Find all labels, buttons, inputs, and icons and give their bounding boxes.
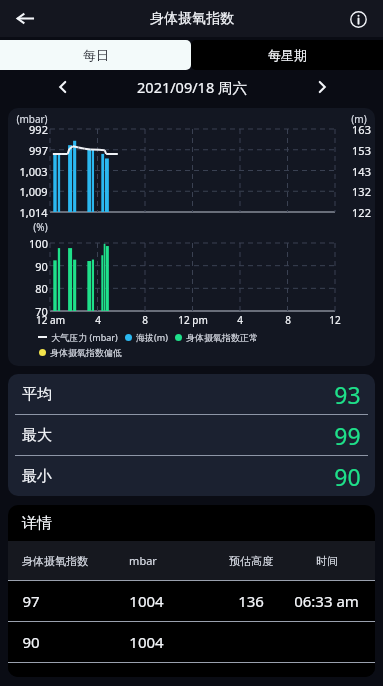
staticText: 身体摄氧指数 — [150, 10, 234, 28]
staticText: 每日 — [83, 47, 109, 63]
button[interactable]: 每日 — [0, 40, 191, 70]
staticText: 70 — [35, 304, 48, 319]
staticText: (%) — [33, 220, 48, 234]
button[interactable]: Info — [340, 1, 376, 37]
staticText: (m) — [351, 112, 367, 126]
button[interactable]: 每星期 — [191, 40, 383, 70]
staticText: 122 — [352, 205, 371, 220]
staticText: 90 — [35, 259, 48, 274]
button[interactable]: 最小 — [8, 456, 375, 496]
staticText: 1,014 — [19, 205, 48, 220]
staticText: 06:33 am — [294, 591, 359, 611]
staticText: 99 — [334, 420, 361, 451]
staticText: 8 — [142, 313, 148, 327]
button[interactable]: 97 — [8, 581, 375, 621]
button[interactable]: 90 — [8, 622, 375, 662]
staticText: 1004 — [129, 591, 164, 611]
staticText: 80 — [35, 281, 48, 296]
staticText: mbar — [129, 553, 157, 568]
staticText: 12 am — [36, 313, 65, 327]
staticText: 90 — [334, 461, 361, 492]
button[interactable]: Previous day — [48, 72, 78, 102]
staticText: 4 — [95, 313, 101, 327]
staticText: (mbar) — [16, 112, 48, 126]
staticText: 身体摄氧指数正常 — [186, 332, 258, 343]
staticText: 1,009 — [19, 184, 48, 199]
staticText: 132 — [352, 184, 371, 199]
staticText: 12 pm — [178, 313, 208, 327]
staticText: 153 — [352, 143, 371, 158]
staticText: 100 — [29, 236, 48, 251]
staticText: 4 — [237, 313, 243, 327]
button[interactable]: 平均 — [8, 374, 375, 414]
staticText: 身体摄氧指数偏低 — [50, 347, 122, 358]
staticText: 992 — [29, 122, 48, 137]
staticText: 大气压力 (mbar) — [51, 331, 118, 343]
staticText: 详情 — [22, 514, 52, 533]
staticText: 身体摄氧指数 — [22, 554, 88, 568]
staticText: 时间 — [316, 554, 338, 568]
staticText: 143 — [352, 164, 371, 179]
staticText: 8 — [285, 313, 291, 327]
staticText: 997 — [29, 143, 48, 158]
staticText: 93 — [334, 379, 361, 410]
staticText: 163 — [352, 122, 371, 137]
staticText: 2021/09/18 周六 — [137, 77, 247, 97]
staticText: 最小 — [22, 467, 52, 486]
staticText: 1,003 — [19, 164, 48, 179]
staticText: 最大 — [22, 426, 52, 445]
button[interactable]: 最大 — [8, 415, 375, 455]
button[interactable]: Back — [6, 0, 44, 37]
staticText: 海拔(m) — [136, 331, 168, 343]
staticText: 97 — [22, 591, 40, 611]
staticText: 12 — [329, 313, 341, 327]
staticText: 平均 — [22, 385, 52, 404]
staticText: 1004 — [129, 632, 164, 652]
staticText: 90 — [22, 632, 40, 652]
staticText: 每星期 — [268, 47, 307, 63]
staticText: 预估高度 — [229, 554, 273, 568]
button[interactable]: Next day — [307, 72, 337, 102]
staticText: 136 — [238, 591, 264, 611]
